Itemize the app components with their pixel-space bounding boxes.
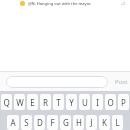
- staticText: Q: [3, 97, 10, 108]
- staticText: G: [63, 117, 69, 128]
- button[interactable]: I: [92, 94, 103, 110]
- button[interactable]: T: [53, 94, 64, 110]
- staticText: T: [56, 97, 61, 108]
- staticText: @N: Hanging out with the mayor.: [28, 1, 121, 6]
- button[interactable]: U: [79, 94, 90, 110]
- button[interactable]: Post: [112, 75, 130, 89]
- button[interactable]: O: [105, 94, 116, 110]
- staticText: F: [50, 117, 55, 128]
- button[interactable]: A: [7, 115, 19, 130]
- button[interactable]: E: [27, 94, 38, 110]
- button[interactable]: P: [118, 94, 129, 110]
- staticText: +2: [121, 1, 126, 6]
- staticText: W: [16, 97, 24, 108]
- button[interactable]: G: [60, 115, 71, 130]
- staticText: A: [10, 117, 16, 128]
- staticText: K: [102, 117, 107, 128]
- staticText: D: [37, 117, 43, 128]
- button[interactable]: W: [14, 94, 25, 110]
- button[interactable]: Y: [66, 94, 77, 110]
- staticText: J: [90, 117, 93, 128]
- button[interactable]: F: [47, 115, 58, 130]
- staticText: R: [43, 97, 48, 108]
- staticText: O: [107, 97, 114, 108]
- button[interactable]: S: [21, 115, 32, 130]
- staticText: P: [121, 97, 126, 108]
- button[interactable]: D: [34, 115, 45, 130]
- button[interactable]: R: [40, 94, 51, 110]
- staticText: U: [82, 97, 88, 108]
- button[interactable]: H: [73, 115, 84, 130]
- staticText: E: [30, 97, 35, 108]
- button[interactable]: J: [86, 115, 97, 130]
- staticText: Y: [69, 97, 74, 108]
- button[interactable]: L: [112, 115, 123, 130]
- staticText: S: [24, 117, 29, 128]
- button[interactable]: @N: Hanging out with the mayor.: [0, 0, 130, 6]
- button[interactable]: Q: [1, 94, 12, 110]
- staticText: L: [115, 117, 120, 128]
- staticText: Post: [115, 78, 128, 86]
- staticText: I: [96, 97, 99, 108]
- button[interactable]: Message input: [6, 76, 108, 88]
- staticText: H: [76, 117, 82, 128]
- button[interactable]: K: [99, 115, 110, 130]
